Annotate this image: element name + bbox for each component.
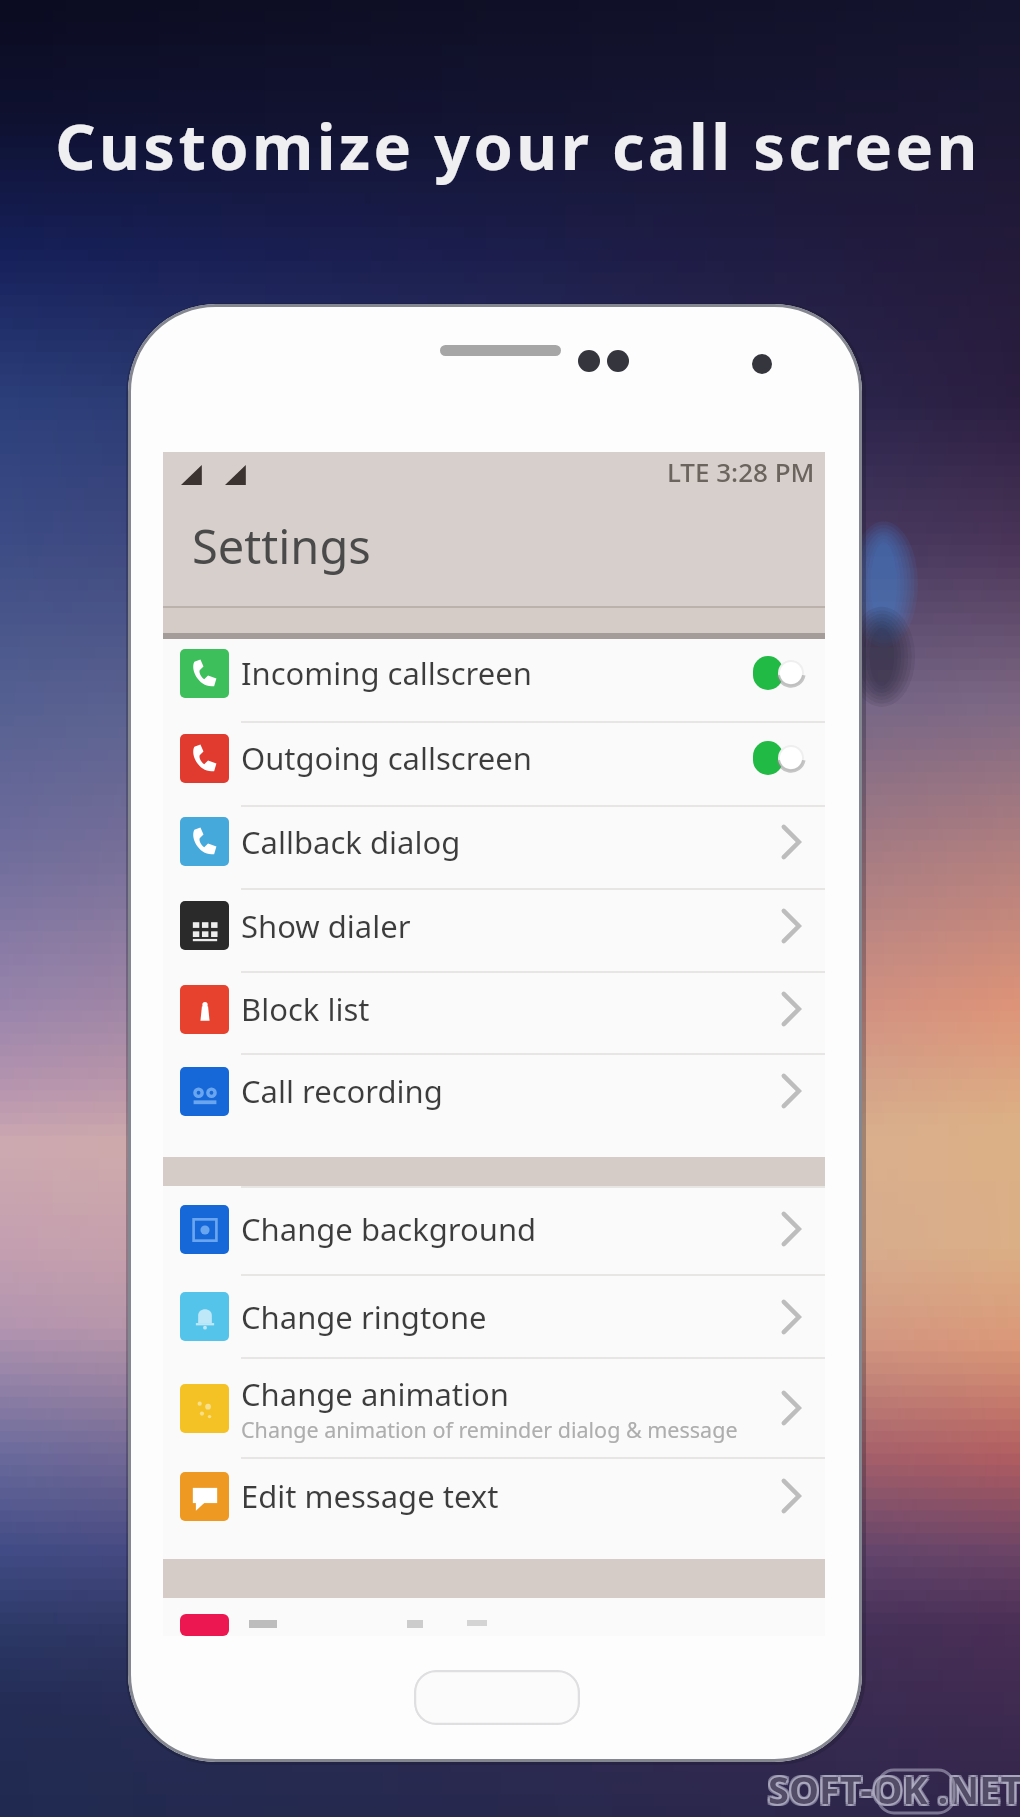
staticText: Customize your call screen (55, 103, 981, 189)
staticText: SOFT-OK .NET (770, 1765, 1020, 1817)
staticText: SOFT-OK .NET (770, 1761, 1020, 1813)
staticText: Outgoing callscreen (241, 737, 532, 779)
button[interactable]: Outgoing callscreen (163, 723, 825, 805)
button[interactable]: Toggle (753, 655, 803, 691)
staticText: SOFT-OK .NET (766, 1765, 1020, 1817)
button[interactable]: Incoming callscreen (163, 639, 825, 721)
staticText: SOFT-OK .NET (766, 1761, 1020, 1813)
button[interactable]: Edit message text (163, 1459, 825, 1559)
button[interactable]: Change background (163, 1188, 825, 1274)
staticText: Callback dialog (241, 821, 461, 863)
staticText: SOFT-OK .NET (768, 1763, 1020, 1815)
staticText: SOFT-OK .NET (768, 1765, 1020, 1817)
button[interactable]: Show dialer (163, 890, 825, 971)
button[interactable]: Block list (163, 973, 825, 1053)
staticText: LTE 3:28 PM (667, 454, 815, 489)
staticText: Edit message text (241, 1475, 499, 1517)
staticText: SOFT-OK .NET (768, 1763, 1020, 1815)
staticText: Call recording (241, 1070, 443, 1112)
staticText: Show dialer (241, 905, 411, 947)
staticText: Incoming callscreen (241, 652, 532, 694)
staticText: SOFT-OK .NET (768, 1761, 1020, 1813)
button[interactable]: Change animation (163, 1359, 825, 1457)
staticText: Change animation of reminder dialog & me… (241, 1415, 738, 1444)
button[interactable]: Change ringtone (163, 1276, 825, 1357)
staticText: Block list (241, 988, 370, 1030)
staticText: Change animation (241, 1373, 509, 1415)
staticText: Change ringtone (241, 1296, 487, 1338)
staticText: Settings (192, 514, 371, 578)
staticText: SOFT-OK .NET (770, 1763, 1020, 1815)
staticText: Change background (241, 1208, 537, 1250)
button[interactable]: Call recording (163, 1055, 825, 1157)
staticText: SOFT-OK .NET (766, 1763, 1020, 1815)
button[interactable]: Callback dialog (163, 807, 825, 888)
button[interactable]: Toggle (753, 740, 803, 776)
